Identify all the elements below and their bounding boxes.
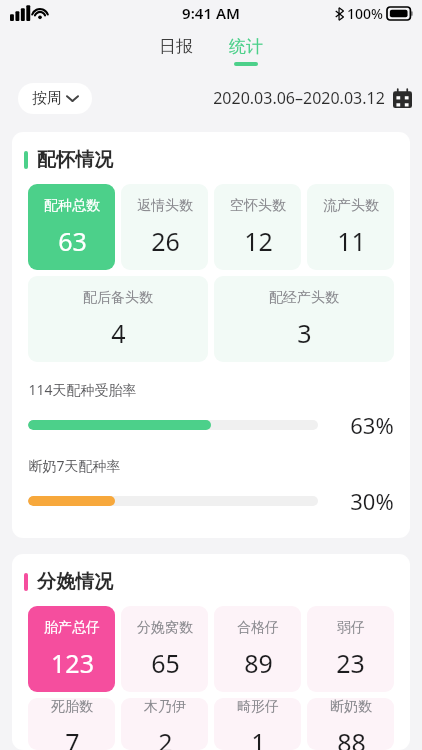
staticText: 30% bbox=[350, 486, 394, 516]
staticText: 26 bbox=[151, 224, 180, 258]
staticText: 配经产头数 bbox=[269, 289, 339, 307]
other: Pick date range bbox=[393, 89, 412, 108]
button[interactable]: 返情头数 bbox=[121, 184, 208, 270]
staticText: 胎产总仔 bbox=[44, 619, 100, 637]
staticText: 统计 bbox=[229, 36, 263, 57]
staticText: 3 bbox=[297, 316, 312, 350]
staticText: 88 bbox=[337, 725, 366, 750]
staticText: 分娩情况 bbox=[37, 570, 113, 594]
button[interactable]: 配后备头数 bbox=[28, 276, 208, 362]
staticText: 流产头数 bbox=[323, 197, 379, 215]
staticText: 合格仔 bbox=[237, 619, 279, 637]
staticText: 65 bbox=[151, 646, 180, 680]
staticText: 63 bbox=[58, 224, 87, 258]
button[interactable]: 2020.03.06–2020.03.12 bbox=[213, 87, 412, 109]
staticText: 断奶数 bbox=[330, 698, 372, 716]
staticText: 返情头数 bbox=[137, 197, 193, 215]
button[interactable]: 日报 bbox=[147, 32, 205, 61]
button[interactable]: 流产头数 bbox=[307, 184, 394, 270]
staticText: 木乃伊 bbox=[144, 698, 186, 716]
staticText: 63% bbox=[350, 410, 394, 440]
staticText: 7 bbox=[65, 725, 80, 750]
button[interactable]: 空怀头数 bbox=[214, 184, 301, 270]
button[interactable]: 木乃伊 bbox=[121, 698, 208, 750]
staticText: 配怀情况 bbox=[37, 148, 113, 172]
button[interactable]: 死胎数 bbox=[28, 698, 115, 750]
staticText: 弱仔 bbox=[337, 619, 365, 637]
staticText: 畸形仔 bbox=[237, 698, 279, 716]
staticText: 配种总数 bbox=[44, 197, 100, 215]
staticText: 2020.03.06–2020.03.12 bbox=[213, 87, 385, 109]
button[interactable]: 统计 bbox=[217, 32, 275, 70]
staticText: 空怀头数 bbox=[230, 197, 286, 215]
button[interactable]: 按周 bbox=[18, 83, 92, 114]
button[interactable]: 畸形仔 bbox=[214, 698, 301, 750]
staticText: 89 bbox=[244, 646, 273, 680]
button[interactable]: 弱仔 bbox=[307, 606, 394, 692]
staticText: 123 bbox=[51, 646, 94, 680]
staticText: 2 bbox=[158, 725, 173, 750]
staticText: 23 bbox=[336, 646, 365, 680]
staticText: 分娩窝数 bbox=[137, 619, 193, 637]
staticText: 9:41 AM bbox=[182, 3, 240, 23]
button[interactable]: 配经产头数 bbox=[214, 276, 394, 362]
staticText: 100% bbox=[347, 4, 383, 23]
button[interactable]: 配种总数 bbox=[28, 184, 115, 270]
staticText: 1 bbox=[251, 725, 266, 750]
staticText: 配后备头数 bbox=[83, 289, 153, 307]
staticText: 死胎数 bbox=[51, 698, 93, 716]
button[interactable]: 分娩窝数 bbox=[121, 606, 208, 692]
staticText: 按周 bbox=[32, 89, 62, 108]
staticText: 4 bbox=[111, 316, 126, 350]
staticText: 114天配种受胎率 bbox=[28, 380, 137, 399]
staticText: 11 bbox=[337, 224, 366, 258]
staticText: 日报 bbox=[159, 36, 193, 57]
button[interactable]: 胎产总仔 bbox=[28, 606, 115, 692]
staticText: 断奶7天配种率 bbox=[28, 456, 121, 475]
button[interactable]: 断奶数 bbox=[307, 698, 394, 750]
button[interactable]: 合格仔 bbox=[214, 606, 301, 692]
staticText: 12 bbox=[244, 224, 273, 258]
